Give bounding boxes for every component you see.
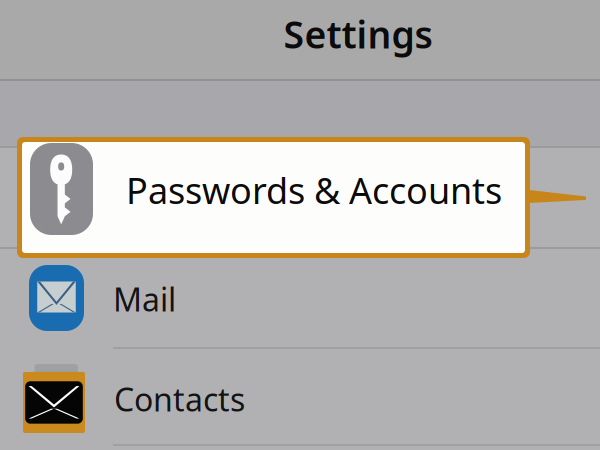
staticText: Contacts <box>114 378 245 420</box>
button[interactable]: Mail <box>0 0 600 450</box>
staticText: Mail <box>113 278 176 320</box>
staticText: Passwords & Accounts <box>126 166 502 214</box>
button[interactable]: Contacts <box>0 0 600 450</box>
staticText: Settings <box>283 9 432 59</box>
button[interactable]: Passwords & Accounts <box>0 0 600 450</box>
